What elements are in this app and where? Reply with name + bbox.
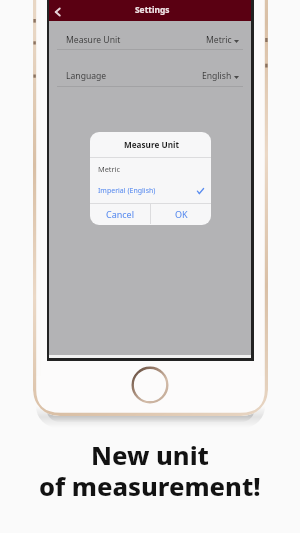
button[interactable]: Imperial (English) — [90, 179, 211, 202]
staticText: Measure Unit — [66, 34, 121, 46]
staticText: of measurement! — [39, 469, 261, 504]
staticText: Metric — [206, 34, 232, 46]
staticText: Metric — [98, 164, 121, 174]
staticText: Imperial (English) — [98, 186, 156, 196]
button[interactable]: Measure Unit — [49, 32, 251, 48]
button[interactable]: OK — [151, 204, 211, 224]
staticText: Settings — [135, 4, 170, 15]
button[interactable]: Metric — [90, 158, 211, 180]
button[interactable]: Language — [49, 68, 251, 84]
button[interactable]: Back — [47, 2, 67, 22]
staticText: New unit — [91, 438, 209, 473]
staticText: English — [202, 70, 232, 82]
button[interactable]: Cancel — [90, 204, 150, 224]
staticText: Language — [66, 70, 107, 82]
button[interactable]: Home — [131, 366, 169, 404]
staticText: OK — [175, 208, 188, 220]
staticText: Measure Unit — [124, 139, 179, 150]
staticText: Cancel — [106, 208, 135, 220]
